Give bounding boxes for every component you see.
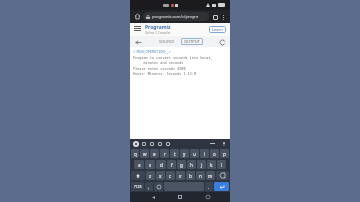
staticText: a <box>138 162 141 168</box>
button[interactable]: v <box>176 171 185 180</box>
staticText: o <box>213 151 216 157</box>
button[interactable]: . <box>205 182 213 191</box>
staticText: p <box>223 151 226 157</box>
button[interactable]: Refresh <box>218 38 226 46</box>
button[interactable]: More options <box>219 13 227 21</box>
button[interactable]: Themes <box>141 141 147 147</box>
staticText: e <box>153 151 156 157</box>
button[interactable]: ?123 <box>131 182 144 191</box>
staticText: programiz.com/c/progra <box>152 14 199 19</box>
button[interactable]: Voice input <box>221 141 227 147</box>
staticText: i <box>204 151 206 157</box>
staticText: g <box>180 162 183 168</box>
button[interactable]: k <box>207 160 216 169</box>
staticText: x <box>159 173 162 179</box>
button[interactable]: Shift <box>131 171 145 180</box>
staticText: , <box>148 184 150 190</box>
staticText: y <box>183 151 186 157</box>
button[interactable]: SOURCE <box>156 38 178 45</box>
button[interactable]: Recent apps <box>203 192 213 202</box>
button[interactable]: f <box>167 160 176 169</box>
button[interactable]: a <box>134 160 144 169</box>
staticText: u <box>193 151 196 157</box>
button[interactable]: r <box>160 149 169 158</box>
button[interactable]: l <box>217 160 226 169</box>
button[interactable]: Google assistant <box>133 141 139 147</box>
button[interactable]: Clipboard <box>165 141 171 147</box>
staticText: <!RUN;OPERATION;_> <box>133 49 171 54</box>
button[interactable]: s <box>145 160 155 169</box>
staticText: n <box>199 173 202 179</box>
button[interactable]: u <box>190 149 199 158</box>
staticText: l <box>221 162 223 168</box>
staticText: Please enter seconds 4500 <box>133 66 186 71</box>
staticText: z <box>149 173 152 179</box>
staticText: j <box>201 162 203 168</box>
staticText: f <box>171 162 173 168</box>
button[interactable]: y <box>180 149 189 158</box>
staticText: m <box>208 173 213 179</box>
staticText: k <box>210 162 213 168</box>
staticText: t <box>174 151 176 157</box>
button[interactable]: Emoji <box>154 182 163 191</box>
button[interactable]: w <box>140 149 149 158</box>
button[interactable]: j <box>197 160 206 169</box>
staticText: Online C Compiler <box>145 31 171 35</box>
button[interactable]: o <box>210 149 219 158</box>
staticText: r <box>164 151 166 157</box>
button[interactable]: d <box>156 160 166 169</box>
button[interactable]: Stickers <box>149 141 155 147</box>
button[interactable]: p <box>220 149 229 158</box>
staticText: d <box>160 162 163 168</box>
staticText: SOURCE <box>159 39 175 44</box>
button[interactable]: Enter <box>214 182 229 191</box>
staticText: h <box>190 162 193 168</box>
button[interactable]: h <box>187 160 196 169</box>
button[interactable]: i <box>200 149 209 158</box>
staticText: minutes and seconds <box>133 60 184 65</box>
button[interactable]: , <box>145 182 153 191</box>
button[interactable]: programiz.com/c/progra <box>143 12 209 21</box>
staticText: Learn <box>212 27 223 32</box>
staticText: s <box>149 162 152 168</box>
button[interactable]: Backspace <box>216 171 229 180</box>
button[interactable]: m <box>206 171 215 180</box>
staticText: q <box>134 151 137 157</box>
button[interactable]: b <box>186 171 195 180</box>
staticText: Hours: Minutes: Seconds 1:15:0 <box>133 71 196 76</box>
button[interactable]: c <box>166 171 175 180</box>
staticText: v <box>179 173 182 179</box>
staticText: Program to convert seconds into hours, <box>133 55 213 60</box>
button[interactable]: Back <box>148 192 158 202</box>
button[interactable]: Tabs <box>211 13 219 21</box>
button[interactable]: n <box>196 171 205 180</box>
button[interactable]: OUTPUT <box>181 38 203 45</box>
button[interactable]: GIF <box>157 141 163 147</box>
button[interactable]: q <box>131 149 139 158</box>
staticText: w <box>143 151 147 157</box>
staticText: ?123 <box>134 184 142 189</box>
staticText: . <box>208 184 210 190</box>
button[interactable]: Home <box>175 192 185 202</box>
staticText: OUTPUT <box>184 39 200 44</box>
button[interactable]: t <box>170 149 179 158</box>
button[interactable]: Menu <box>134 26 142 34</box>
button[interactable]: z <box>146 171 155 180</box>
button[interactable]: Back <box>134 38 142 46</box>
button[interactable]: Learn <box>209 26 226 33</box>
staticText: b <box>189 173 192 179</box>
button[interactable]: e <box>150 149 159 158</box>
button[interactable]: g <box>177 160 186 169</box>
button[interactable]: Home <box>133 12 142 21</box>
staticText: Programiz <box>145 24 171 31</box>
button[interactable]: x <box>156 171 165 180</box>
staticText: c <box>169 173 172 179</box>
